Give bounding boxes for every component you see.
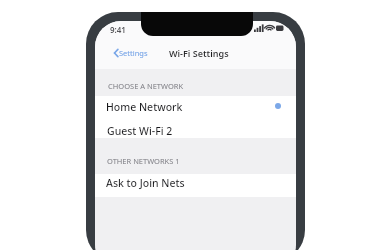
staticText: Settings — [119, 48, 148, 58]
staticText: Wi-Fi Settings — [169, 47, 229, 59]
staticText: Guest Wi-Fi 2 — [107, 124, 173, 138]
staticText: OTHER NETWORKS 1 — [107, 156, 180, 166]
button[interactable]: Back to Settings — [113, 46, 148, 60]
button[interactable] — [95, 96, 296, 138]
button[interactable] — [95, 174, 296, 197]
staticText: 9:41 — [110, 24, 126, 35]
staticText: Ask to Join Nets — [106, 176, 185, 190]
staticText: Home Network — [106, 100, 183, 114]
staticText: CHOOSE A NETWORK — [108, 81, 184, 91]
